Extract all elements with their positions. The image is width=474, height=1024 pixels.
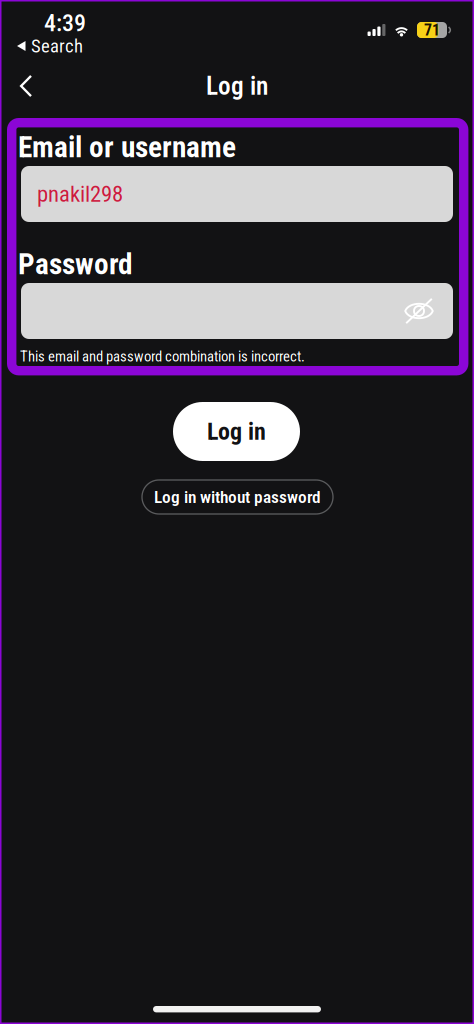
- button[interactable]: Show password: [396, 288, 442, 334]
- button[interactable]: Back: [4, 64, 48, 108]
- staticText: Password: [18, 247, 133, 281]
- button[interactable]: Password: [21, 283, 453, 339]
- button[interactable]: pnakil298: [21, 166, 453, 222]
- button[interactable]: Log in without password: [142, 480, 333, 514]
- staticText: Log in without password: [154, 487, 321, 507]
- staticText: 71: [424, 21, 440, 39]
- staticText: pnakil298: [37, 181, 123, 207]
- staticText: Email or username: [18, 130, 236, 164]
- staticText: Search: [31, 35, 83, 57]
- staticText: 4:39: [44, 9, 86, 37]
- button[interactable]: Search: [17, 37, 83, 55]
- staticText: Log in: [206, 71, 268, 101]
- staticText: This email and password combination is i…: [20, 348, 305, 365]
- button[interactable]: Log in: [173, 402, 300, 461]
- staticText: Log in: [207, 417, 266, 445]
